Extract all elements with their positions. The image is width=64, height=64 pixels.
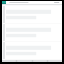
- button[interactable]: [3, 42, 61, 59]
- button[interactable]: Home: [15, 60, 18, 62]
- button[interactable]: [6, 1, 62, 4]
- button[interactable]: Menu: [2, 1, 6, 4]
- button[interactable]: [3, 24, 61, 41]
- button[interactable]: Search: [31, 60, 34, 62]
- button[interactable]: Profile: [46, 60, 49, 62]
- button[interactable]: [3, 6, 61, 23]
